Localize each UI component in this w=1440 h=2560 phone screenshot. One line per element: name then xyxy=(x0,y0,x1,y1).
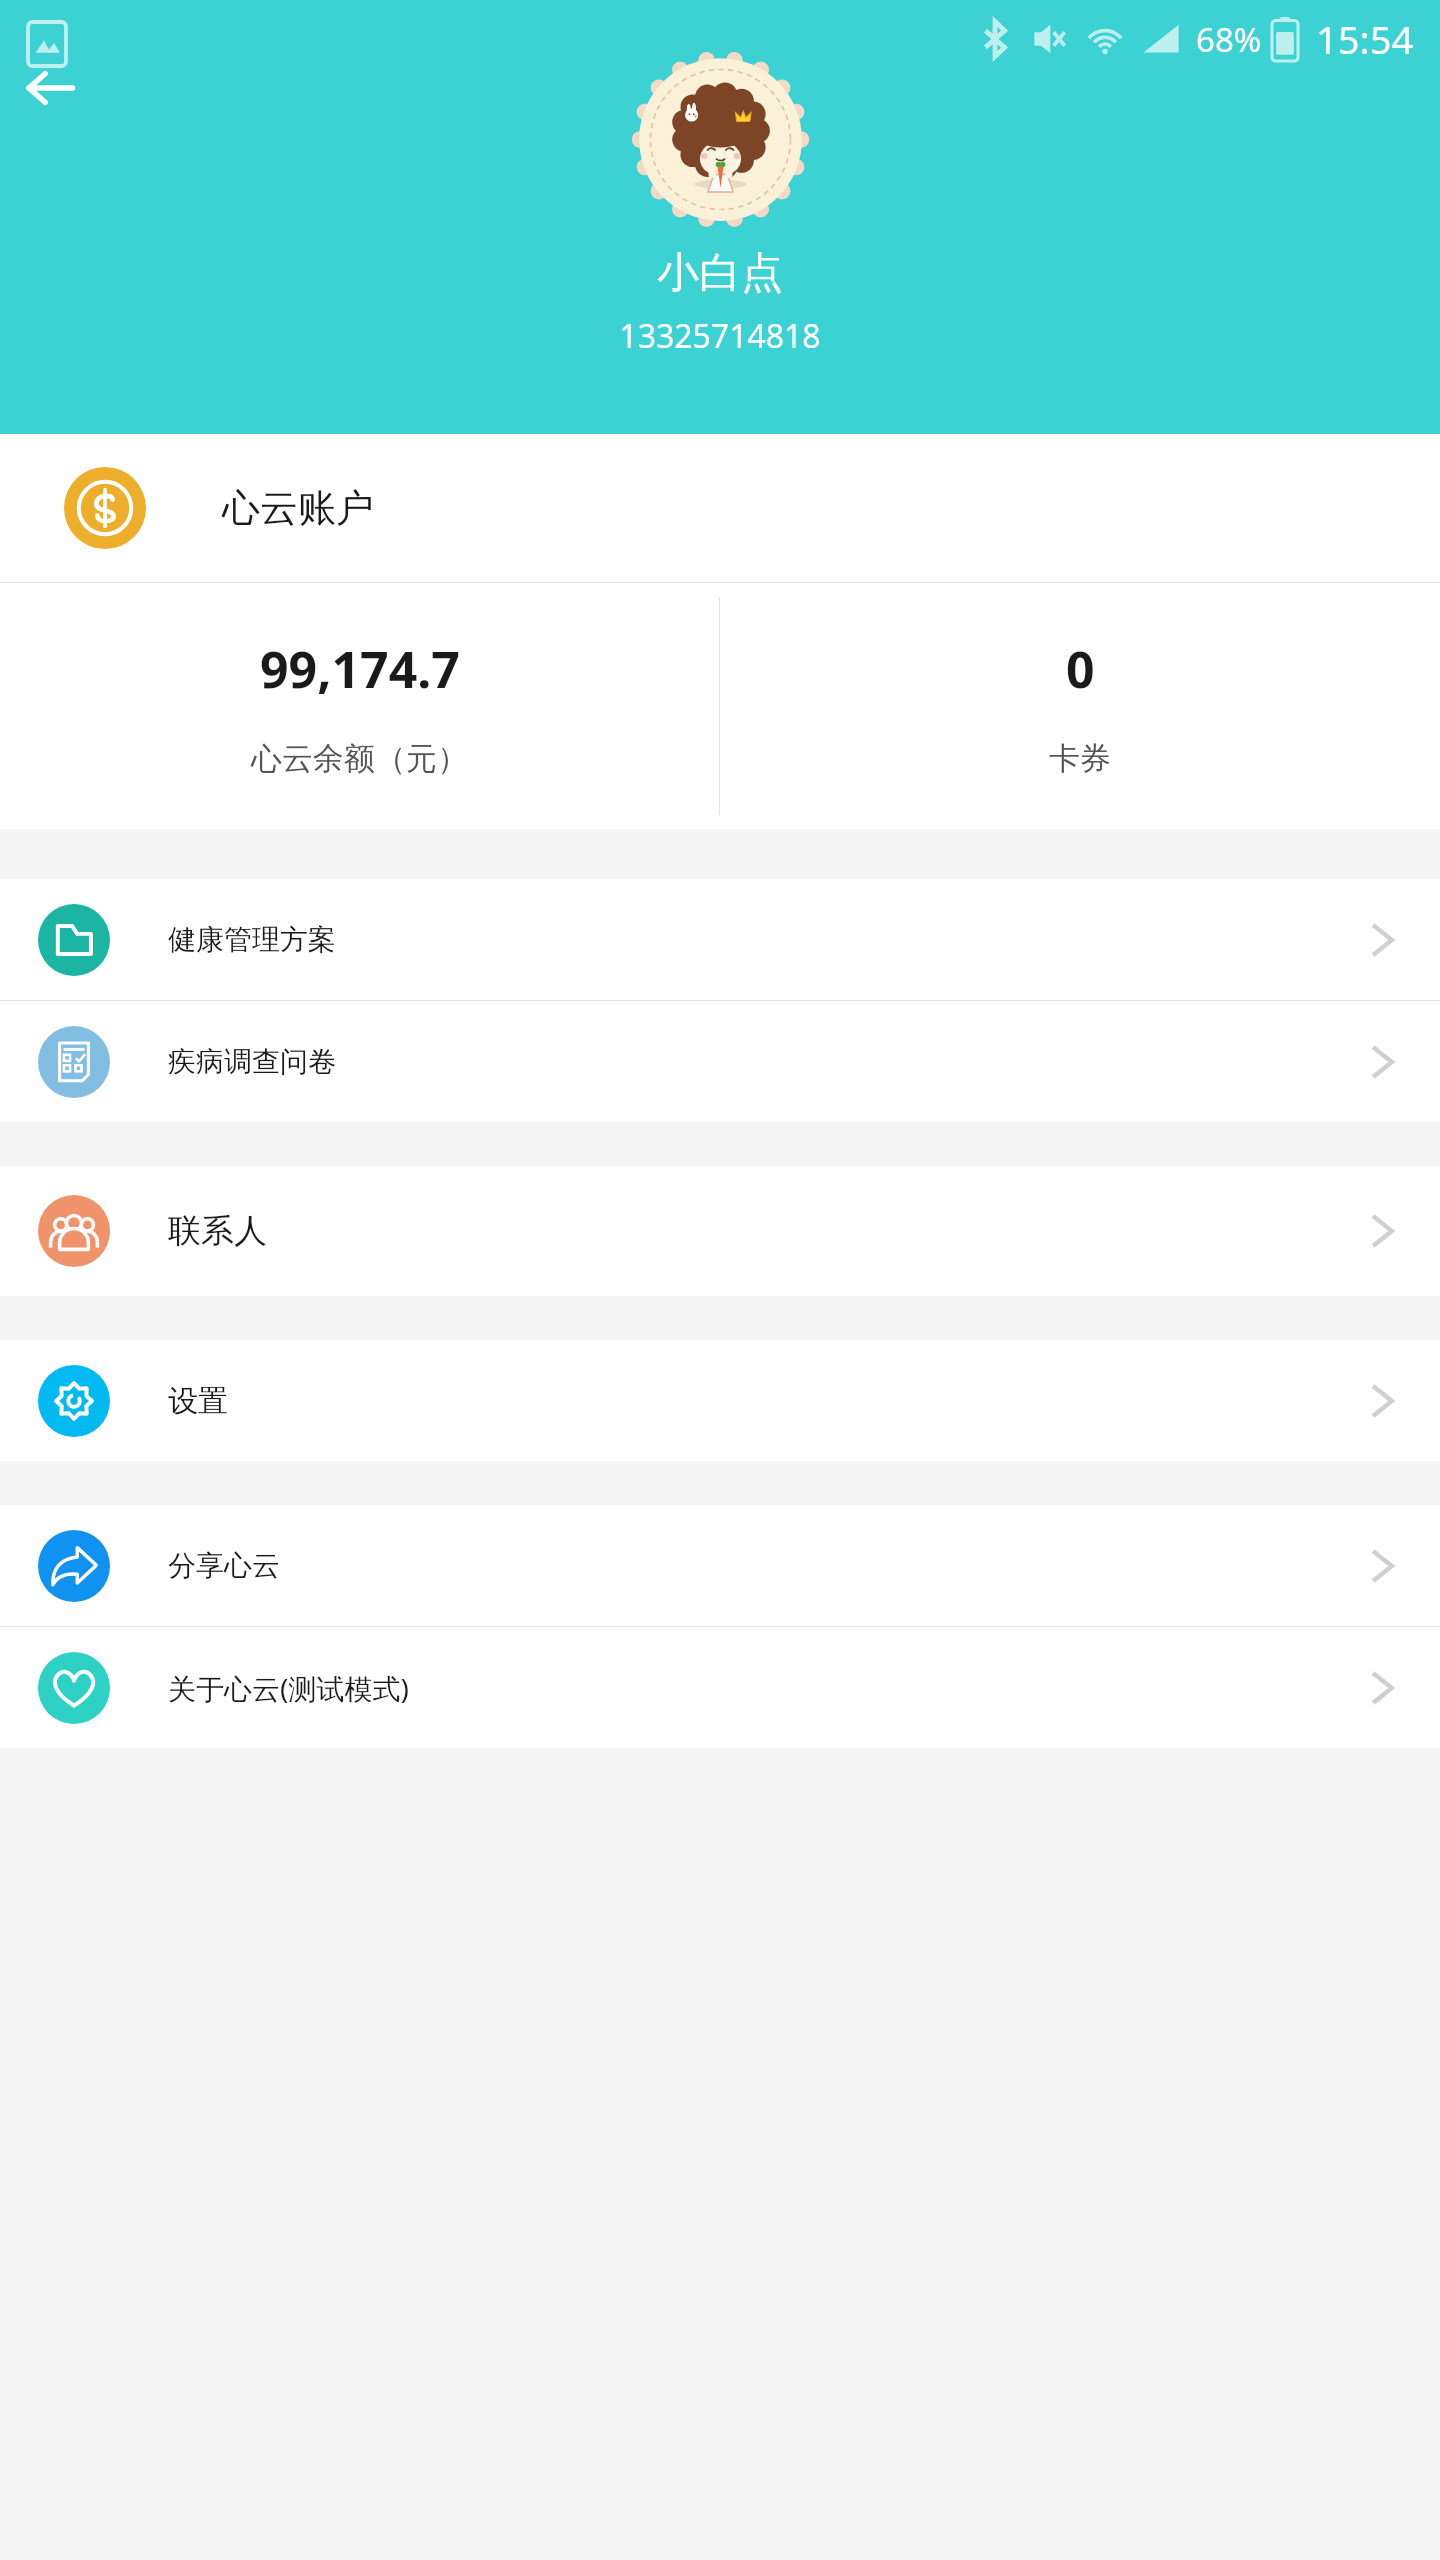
staticText: 分享心云 xyxy=(168,1548,280,1583)
button[interactable]: 99,174.7 xyxy=(0,583,719,829)
staticText: 卡券 xyxy=(1049,739,1111,778)
staticText: 心云余额（元） xyxy=(251,739,468,778)
staticText: 小白点 xyxy=(657,247,783,300)
staticText: 疾病调查问卷 xyxy=(168,1044,336,1079)
staticText: 健康管理方案 xyxy=(168,922,336,957)
staticText: 99,174.7 xyxy=(260,635,460,703)
staticText: 68% xyxy=(1196,17,1262,62)
button[interactable]: 关于心云(测试模式) xyxy=(0,1627,1440,1748)
staticText: 13325714818 xyxy=(619,314,821,358)
button[interactable]: 心云账户 xyxy=(0,434,1440,582)
staticText: 0 xyxy=(1066,635,1095,703)
button[interactable]: 疾病调查问卷 xyxy=(0,1001,1440,1122)
button[interactable]: 联系人 xyxy=(0,1166,1440,1296)
staticText: 15:54 xyxy=(1316,13,1414,65)
staticText: 心云账户 xyxy=(222,484,374,532)
button[interactable]: 分享心云 xyxy=(0,1505,1440,1626)
staticText: 联系人 xyxy=(168,1210,267,1252)
staticText: 关于心云(测试模式) xyxy=(168,1669,409,1707)
button[interactable]: 0 xyxy=(720,583,1440,829)
button[interactable]: Back xyxy=(10,48,90,128)
button[interactable]: 设置 xyxy=(0,1340,1440,1461)
staticText: 设置 xyxy=(168,1382,228,1420)
button[interactable]: 健康管理方案 xyxy=(0,879,1440,1000)
